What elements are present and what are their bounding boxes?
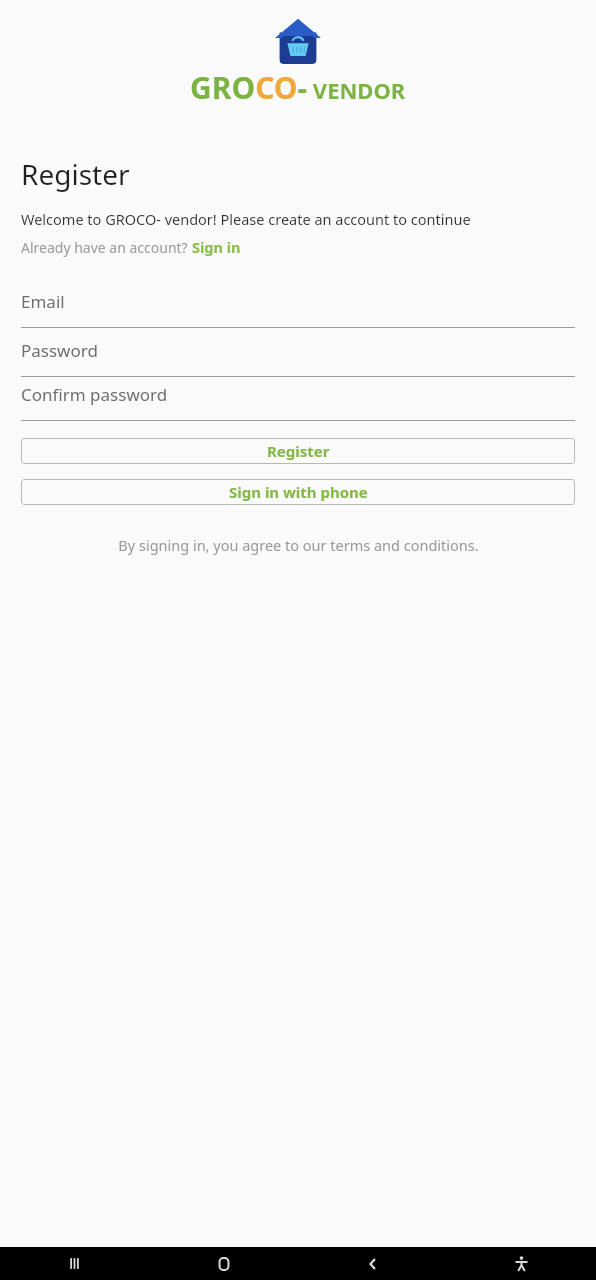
- staticText: Already have an account?: [21, 238, 192, 257]
- staticText: Email: [21, 290, 65, 313]
- button[interactable]: Email: [21, 290, 575, 328]
- staticText: Register: [267, 441, 330, 461]
- button[interactable]: Back: [298, 1247, 447, 1280]
- button[interactable]: Recent apps: [0, 1247, 149, 1280]
- button[interactable]: Home: [149, 1247, 298, 1280]
- staticText: By signing in, you agree to our terms an…: [118, 535, 479, 555]
- staticText: Confirm password: [21, 383, 168, 406]
- button[interactable]: Sign in with phone: [21, 479, 575, 505]
- button[interactable]: Accessibility: [447, 1247, 596, 1280]
- staticText: Password: [21, 339, 98, 362]
- staticText: Sign in with phone: [229, 482, 368, 502]
- staticText: Register: [21, 155, 130, 193]
- staticText: Welcome to GROCO- vendor! Please create …: [21, 209, 471, 229]
- staticText: GROCO- VENDOR: [190, 67, 406, 108]
- button[interactable]: Sign in: [192, 237, 241, 257]
- button[interactable]: Password: [21, 339, 575, 377]
- button[interactable]: Confirm password: [21, 383, 575, 421]
- staticText: Sign in: [192, 237, 241, 257]
- button[interactable]: Register: [21, 438, 575, 464]
